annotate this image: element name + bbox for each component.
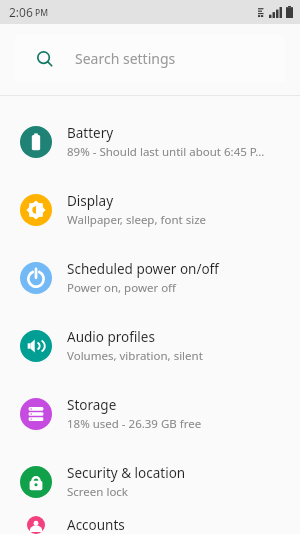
button[interactable]: Audio profiles	[0, 312, 300, 380]
staticText: 18% used - 26.39 GB free	[67, 416, 202, 432]
staticText: 2:06	[9, 4, 33, 20]
staticText: 89% - Should last until about 6:45 P…	[67, 144, 265, 160]
staticText: Power on, power off	[67, 280, 177, 296]
staticText: Screen lock	[67, 484, 129, 500]
button[interactable]: Battery	[0, 108, 300, 176]
staticText: Volumes, vibration, silent	[67, 348, 203, 364]
staticText: Accounts	[67, 516, 125, 534]
staticText: Scheduled power on/off	[67, 260, 219, 278]
staticText: Wallpaper, sleep, font size	[67, 212, 207, 228]
button[interactable]: Display	[0, 176, 300, 244]
staticText: Search settings	[75, 49, 176, 68]
button[interactable]: Search	[15, 35, 285, 82]
staticText: Storage	[67, 396, 117, 414]
other: Search	[36, 50, 54, 68]
button[interactable]: Security & location	[0, 448, 300, 516]
staticText: Audio profiles	[67, 328, 155, 346]
staticText: PM	[35, 7, 48, 19]
button[interactable]: Scheduled power on/off	[0, 244, 300, 312]
staticText: Security & location	[67, 464, 186, 482]
staticText: Display	[67, 192, 114, 210]
button[interactable]: Accounts	[0, 516, 300, 534]
button[interactable]: Storage	[0, 380, 300, 448]
staticText: Battery	[67, 124, 114, 142]
